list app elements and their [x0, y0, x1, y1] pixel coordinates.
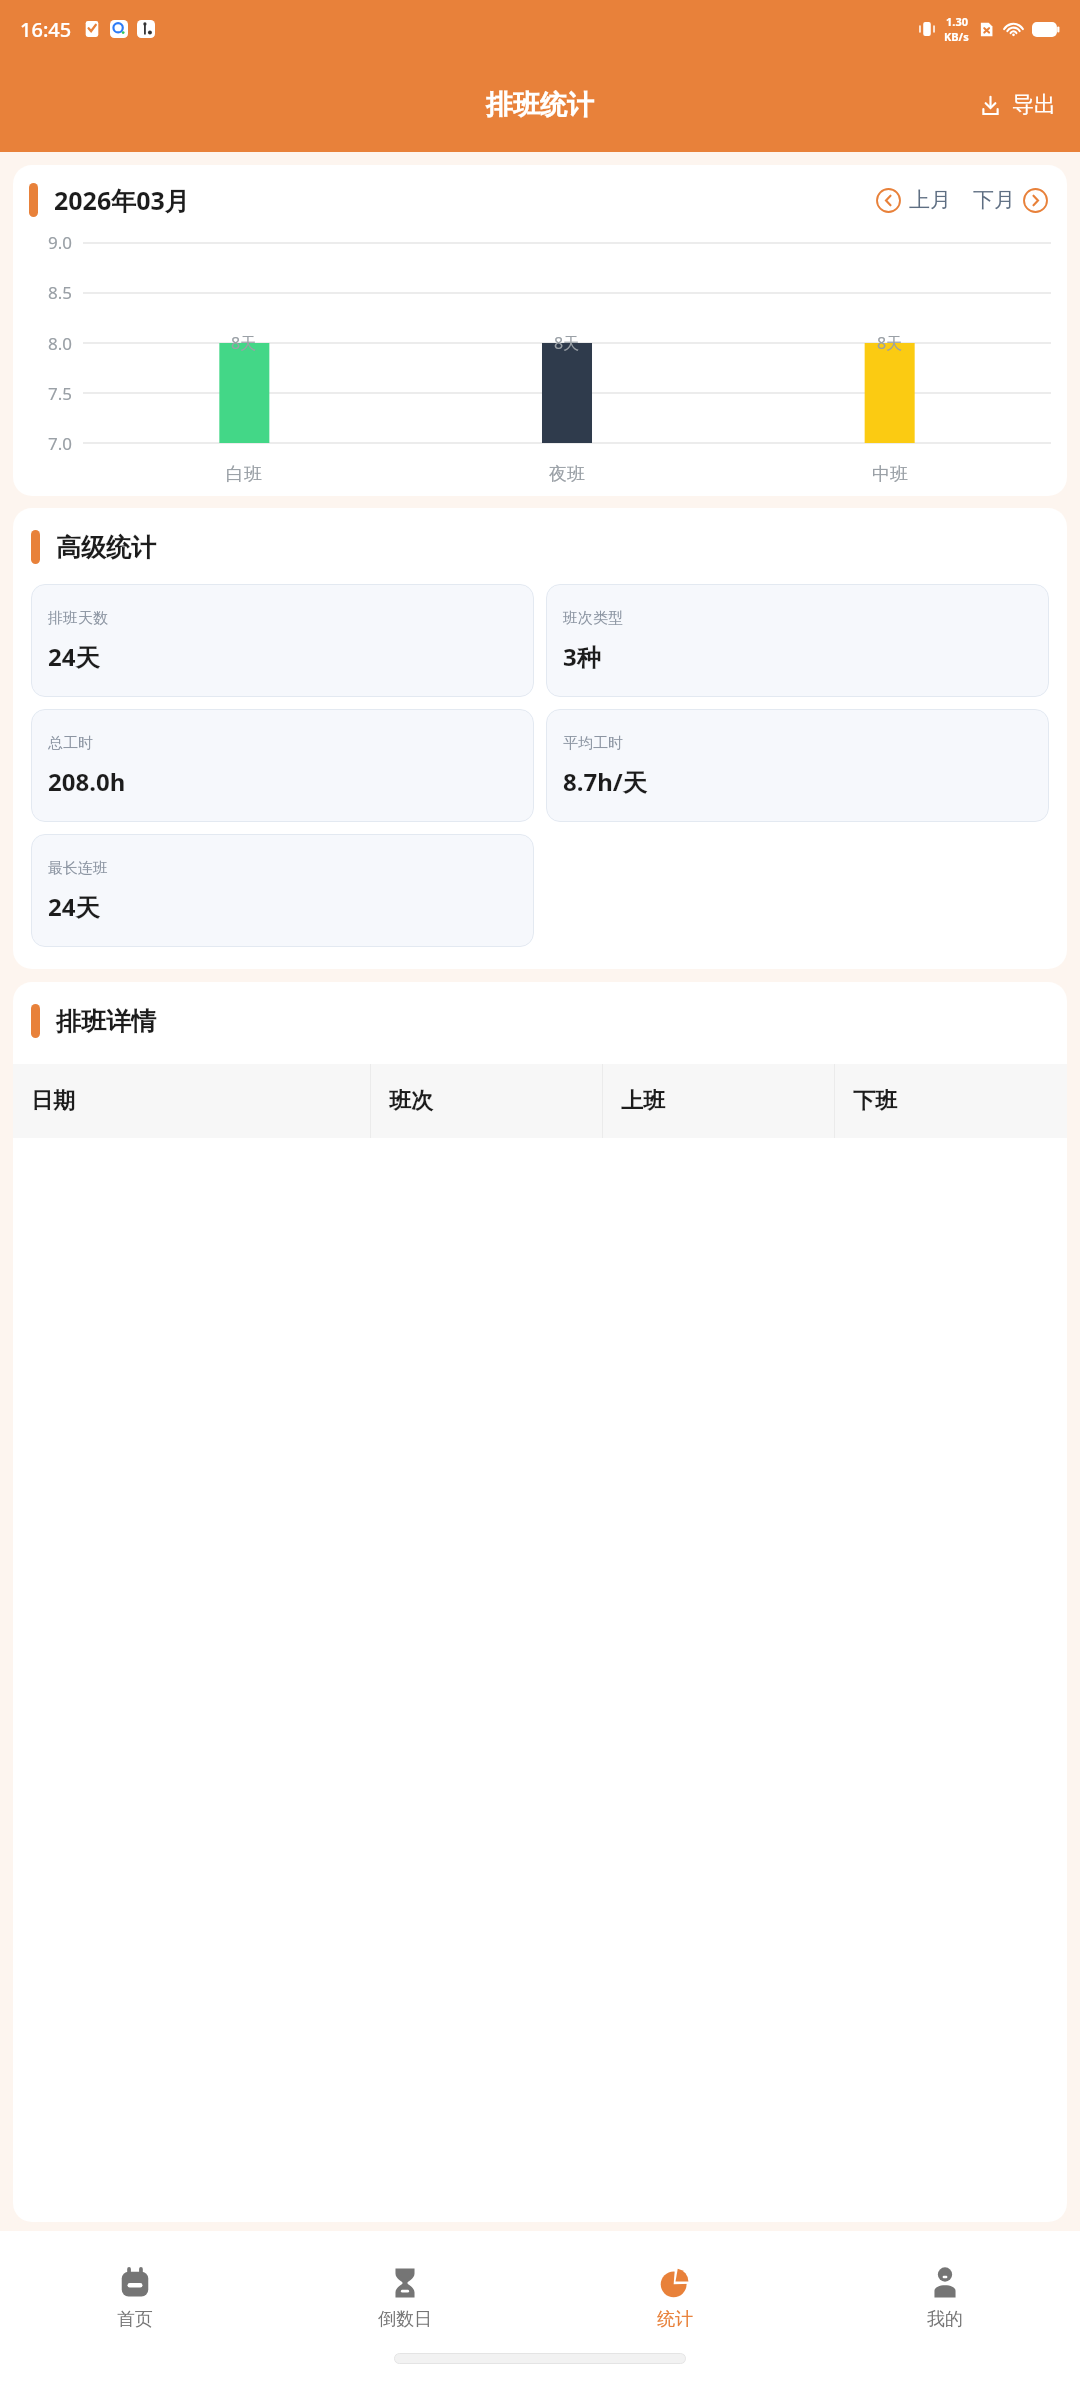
staticText: KB/s	[944, 29, 969, 44]
staticText: 倒数日	[378, 2308, 432, 2331]
staticText: 1.30	[946, 14, 968, 29]
button[interactable]: 导出	[971, 83, 1064, 127]
staticText: 排班详情	[56, 1006, 156, 1037]
staticText: 日期	[31, 1087, 75, 1115]
staticText: 统计	[657, 2308, 693, 2331]
other: 下月	[1023, 188, 1048, 213]
staticText: 我的	[927, 2308, 963, 2331]
button[interactable]: 排班天数	[31, 584, 534, 697]
button[interactable]: 上月	[873, 184, 954, 216]
staticText: 白班	[226, 463, 262, 486]
staticText: 首页	[117, 2308, 153, 2331]
button[interactable]: 班次类型	[546, 584, 1049, 697]
button[interactable]: 我的	[810, 2262, 1080, 2335]
staticText: 7.5	[48, 382, 73, 405]
staticText: 夜班	[549, 463, 585, 486]
staticText: 最长连班	[48, 859, 108, 878]
staticText: 9.0	[48, 231, 73, 254]
staticText: 8天	[877, 332, 903, 354]
staticText: 3种	[563, 640, 601, 673]
staticText: 8天	[554, 332, 580, 354]
staticText: 排班统计	[486, 88, 594, 122]
staticText: 8.5	[48, 281, 73, 304]
staticText: 班次	[389, 1087, 433, 1115]
button[interactable]: 总工时	[31, 709, 534, 822]
button[interactable]: 最长连班	[31, 834, 534, 947]
staticText: 班次类型	[563, 609, 623, 628]
staticText: 208.0h	[48, 765, 126, 798]
staticText: 上班	[621, 1087, 665, 1115]
staticText: 8.7h/天	[563, 765, 647, 798]
staticText: 中班	[872, 463, 908, 486]
staticText: 2026年03月	[54, 183, 190, 217]
button[interactable]: 倒数日	[270, 2262, 540, 2335]
staticText: 排班天数	[48, 609, 108, 628]
other: 上月	[876, 188, 901, 213]
staticText: 下班	[853, 1087, 897, 1115]
staticText: 16:45	[20, 16, 72, 43]
button[interactable]: 平均工时	[546, 709, 1049, 822]
staticText: 24天	[48, 640, 100, 673]
button[interactable]: 统计	[540, 2262, 810, 2335]
staticText: 上月	[909, 187, 951, 213]
button[interactable]: 下月	[970, 184, 1051, 216]
staticText: 总工时	[48, 734, 93, 753]
staticText: 平均工时	[563, 734, 623, 753]
staticText: 24天	[48, 890, 100, 923]
staticText: 8.0	[48, 332, 73, 355]
staticText: 高级统计	[56, 532, 156, 563]
staticText: 8天	[231, 332, 257, 354]
staticText: 导出	[1012, 91, 1056, 119]
button[interactable]: 首页	[0, 2262, 270, 2335]
staticText: 7.0	[48, 432, 73, 455]
staticText: 下月	[973, 187, 1015, 213]
